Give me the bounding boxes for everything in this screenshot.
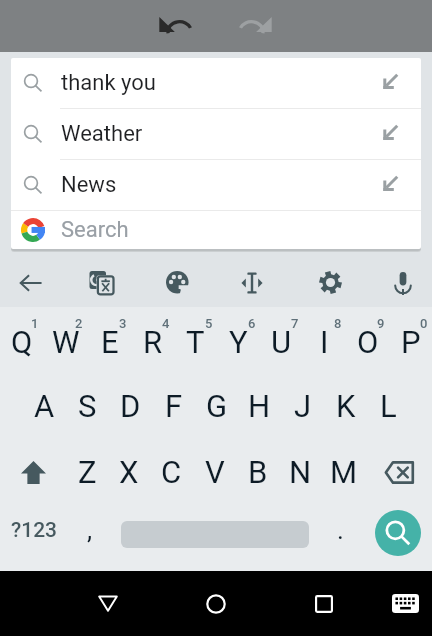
button[interactable]: H <box>238 373 281 439</box>
button[interactable]: F <box>152 373 195 439</box>
staticText: 9 <box>377 316 385 331</box>
button[interactable]: Search <box>375 510 421 556</box>
staticText: I <box>320 324 329 360</box>
button[interactable]: 6 <box>217 307 260 373</box>
button[interactable]: . <box>314 500 367 566</box>
button[interactable]: News <box>11 160 421 210</box>
staticText: R <box>143 324 163 360</box>
staticText: V <box>205 454 225 490</box>
button[interactable]: Space <box>116 500 314 566</box>
staticText: Z <box>78 454 97 490</box>
staticText: A <box>34 388 55 424</box>
button[interactable]: 2 <box>44 307 88 373</box>
button[interactable]: M <box>322 439 365 505</box>
staticText: 1 <box>31 316 39 331</box>
staticText: Weather <box>61 121 143 147</box>
staticText: 0 <box>420 316 428 331</box>
staticText: H <box>248 388 271 424</box>
staticText: 7 <box>291 316 299 331</box>
button[interactable]: 0 <box>389 307 432 373</box>
staticText: U <box>271 324 292 360</box>
button[interactable]: A <box>23 373 66 439</box>
staticText: G <box>206 388 228 424</box>
button[interactable]: 7 <box>260 307 303 373</box>
staticText: B <box>248 454 268 490</box>
staticText: C <box>161 454 182 490</box>
button[interactable]: Settings <box>303 258 357 307</box>
button[interactable]: , <box>63 500 116 566</box>
button[interactable]: 8 <box>303 307 346 373</box>
button[interactable]: thank you <box>11 58 421 108</box>
button[interactable]: D <box>109 373 152 439</box>
staticText: . <box>337 515 344 545</box>
button[interactable]: Recents <box>296 571 352 636</box>
button[interactable]: ?123 <box>0 500 63 566</box>
staticText: K <box>336 388 356 424</box>
staticText: ?123 <box>11 518 58 543</box>
staticText: N <box>289 454 312 490</box>
button[interactable]: J <box>281 373 324 439</box>
staticText: J <box>294 388 312 424</box>
staticText: Search <box>61 217 129 243</box>
button[interactable]: Backspace <box>365 439 432 505</box>
staticText: Q <box>11 324 33 360</box>
button[interactable]: L <box>367 373 410 439</box>
button[interactable]: K <box>324 373 367 439</box>
button[interactable]: Theme <box>150 258 204 307</box>
button[interactable]: Text editing <box>225 258 279 307</box>
button[interactable]: Voice input <box>376 258 430 307</box>
staticText: 2 <box>75 316 83 331</box>
button[interactable]: Search <box>11 211 421 249</box>
button[interactable]: N <box>279 439 322 505</box>
staticText: X <box>119 454 139 490</box>
button[interactable]: 1 <box>0 307 44 373</box>
staticText: Y <box>229 324 248 360</box>
button[interactable]: C <box>150 439 193 505</box>
staticText: 4 <box>162 316 170 331</box>
staticText: S <box>78 388 97 424</box>
staticText: 6 <box>248 316 256 331</box>
staticText: 3 <box>119 316 127 331</box>
button[interactable]: 3 <box>88 307 131 373</box>
staticText: T <box>186 324 205 360</box>
staticText: F <box>165 388 183 424</box>
button[interactable]: Shift <box>0 439 66 505</box>
button[interactable]: V <box>193 439 236 505</box>
staticText: thank you <box>61 70 156 96</box>
staticText: P <box>401 324 421 360</box>
button[interactable]: Back <box>80 571 136 636</box>
button[interactable]: 5 <box>174 307 217 373</box>
staticText: O <box>357 324 379 360</box>
button[interactable]: Back <box>4 258 58 307</box>
staticText: , <box>87 515 93 545</box>
button[interactable]: Translate <box>74 258 128 307</box>
button[interactable]: Switch keyboard <box>377 571 432 636</box>
staticText: 8 <box>334 316 342 331</box>
staticText: M <box>330 454 358 490</box>
staticText: E <box>101 324 119 360</box>
button[interactable]: G <box>195 373 238 439</box>
button[interactable]: 9 <box>346 307 389 373</box>
staticText: L <box>380 388 397 424</box>
button[interactable]: Weather <box>11 109 421 159</box>
button[interactable]: B <box>236 439 279 505</box>
button[interactable]: Undo <box>149 0 201 52</box>
button[interactable]: Z <box>66 439 108 505</box>
staticText: W <box>52 324 80 360</box>
button[interactable]: S <box>66 373 109 439</box>
button[interactable]: Redo <box>229 0 281 52</box>
button[interactable]: X <box>108 439 150 505</box>
staticText: 5 <box>205 316 213 331</box>
button[interactable]: Home <box>188 571 244 636</box>
staticText: News <box>61 172 117 198</box>
button[interactable]: 4 <box>131 307 174 373</box>
staticText: D <box>120 388 141 424</box>
